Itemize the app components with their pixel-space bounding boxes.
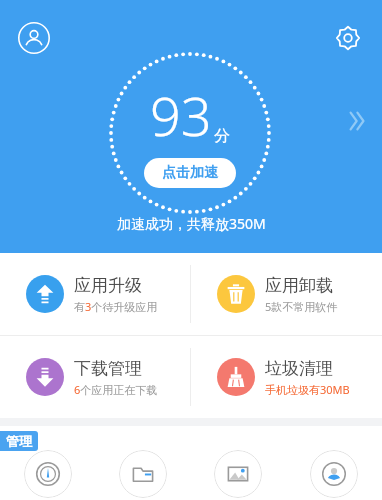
staticText: 93 [150,78,212,152]
button[interactable]: 垃圾管理 [95,450,190,500]
button[interactable]: 个人中心 [286,450,382,500]
button[interactable]: Profile [12,16,56,60]
button[interactable]: 垃圾清理 [191,336,382,418]
staticText: 手机垃圾有30MB [265,382,350,397]
button[interactable]: 点击加速 [144,158,236,188]
staticText: 5款不常用软件 [265,299,338,314]
staticText: 管理 [6,433,32,449]
staticText: 点击加速 [162,164,218,182]
staticText: 应用升级 [74,275,142,296]
staticText: 分 [214,126,230,146]
staticText: 垃圾清理 [265,358,333,379]
staticText: 下载管理 [74,358,142,379]
staticText: 6个应用正在下载 [74,382,158,397]
button[interactable]: 应用升级 [0,253,190,335]
button[interactable]: 手机加速 [0,450,95,500]
button[interactable]: Settings [326,16,370,60]
staticText: 加速成功，共释放350M [117,214,266,233]
staticText: 应用卸载 [265,275,333,296]
button[interactable]: 短视频管理 [190,450,286,500]
button[interactable]: 下载管理 [0,336,190,418]
button[interactable]: 管理 [0,431,38,451]
staticText: 有3个待升级应用 [74,299,158,314]
button[interactable]: More [338,102,376,140]
button[interactable]: 应用卸载 [191,253,382,335]
